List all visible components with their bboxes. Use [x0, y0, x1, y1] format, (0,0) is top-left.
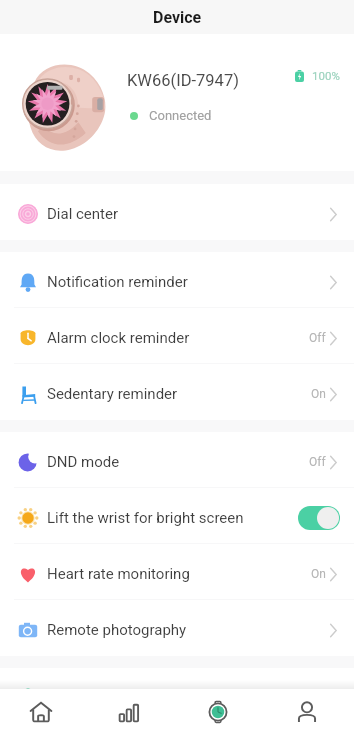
staticText: Notification reminder	[47, 273, 188, 291]
staticText: 100%	[312, 69, 340, 82]
staticText: Dial center	[47, 205, 119, 223]
button[interactable]: Find device	[0, 668, 354, 724]
staticText: Lift the wrist for bright screen	[47, 509, 244, 527]
staticText: On	[311, 567, 326, 581]
button[interactable]: Notification reminder	[0, 252, 354, 308]
button[interactable]: Heart rate monitoring	[0, 544, 354, 600]
staticText: Remote photography	[47, 621, 187, 639]
staticText: Connected	[149, 108, 212, 123]
button[interactable]: Sedentary reminder	[0, 364, 354, 420]
button[interactable]: Dial center	[0, 184, 354, 240]
button[interactable]: Alarm clock reminder	[0, 308, 354, 364]
button[interactable]: Profile	[265, 689, 354, 734]
staticText: Sedentary reminder	[47, 385, 178, 403]
staticText: DND mode	[47, 453, 120, 471]
button[interactable]: DND mode	[0, 432, 354, 488]
staticText: Off	[309, 455, 326, 469]
button[interactable]: Remote photography	[0, 600, 354, 656]
staticText: Device	[153, 8, 202, 27]
button[interactable]: Statistics	[88, 689, 176, 734]
staticText: Alarm clock reminder	[47, 329, 190, 347]
staticText: KW66(ID-7947)	[127, 71, 239, 90]
staticText: On	[311, 387, 326, 401]
button[interactable]: Device	[176, 689, 265, 734]
staticText: Off	[309, 331, 326, 345]
staticText: Heart rate monitoring	[47, 565, 190, 583]
button[interactable]: Home	[0, 689, 88, 734]
button[interactable]: Lift the wrist for bright screen	[0, 488, 354, 544]
